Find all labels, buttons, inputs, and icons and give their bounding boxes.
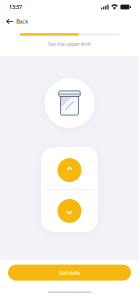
button[interactable]: Validate xyxy=(8,265,131,281)
button[interactable]: Decrease value xyxy=(41,190,98,232)
button[interactable]: Increase value xyxy=(41,147,98,189)
staticText: 13:37 xyxy=(9,3,22,11)
staticText: Back xyxy=(16,18,28,25)
staticText: Validate xyxy=(59,269,80,276)
staticText: Set the upper limit xyxy=(48,40,91,47)
button[interactable]: Back xyxy=(0,16,34,27)
